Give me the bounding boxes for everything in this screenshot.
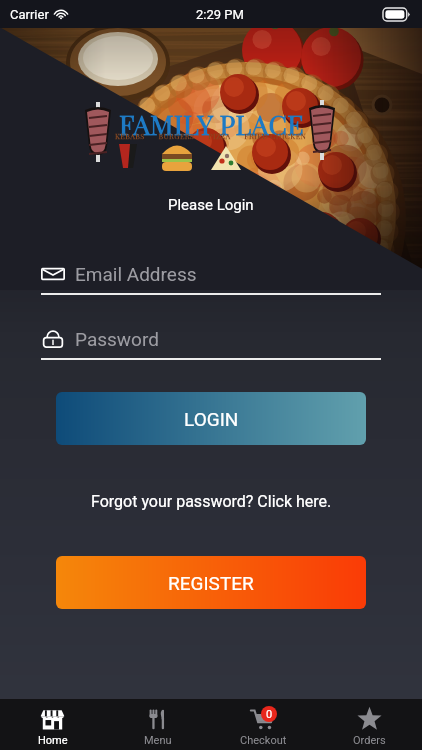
button[interactable]: Password bbox=[41, 327, 381, 360]
staticText: Menu bbox=[144, 734, 172, 747]
staticText: Carrier bbox=[10, 7, 49, 22]
staticText: Please Login bbox=[168, 196, 254, 214]
button[interactable]: 0 bbox=[210, 699, 316, 750]
staticText: Checkout bbox=[240, 734, 287, 747]
button[interactable]: Orders bbox=[316, 699, 422, 750]
staticText: KEBABS BURGERS PIZZA FRIED CHICKEN bbox=[115, 131, 307, 141]
button[interactable]: Home bbox=[0, 699, 105, 750]
staticText: LOGIN bbox=[184, 408, 239, 430]
staticText: Password bbox=[75, 328, 159, 350]
button[interactable]: Menu bbox=[105, 699, 210, 750]
staticText: Home bbox=[38, 734, 68, 747]
button[interactable]: LOGIN bbox=[56, 392, 366, 445]
staticText: 0 bbox=[266, 708, 273, 721]
staticText: Email Address bbox=[75, 263, 197, 285]
staticText: Orders bbox=[353, 734, 386, 747]
staticText: FAMILY PLACE bbox=[119, 106, 304, 142]
staticText: 2:29 PM bbox=[196, 7, 244, 22]
button[interactable]: Forgot your password? Click here. bbox=[91, 492, 332, 511]
staticText: REGISTER bbox=[168, 572, 254, 594]
button[interactable]: Email Address bbox=[41, 262, 381, 295]
button[interactable]: REGISTER bbox=[56, 556, 366, 609]
